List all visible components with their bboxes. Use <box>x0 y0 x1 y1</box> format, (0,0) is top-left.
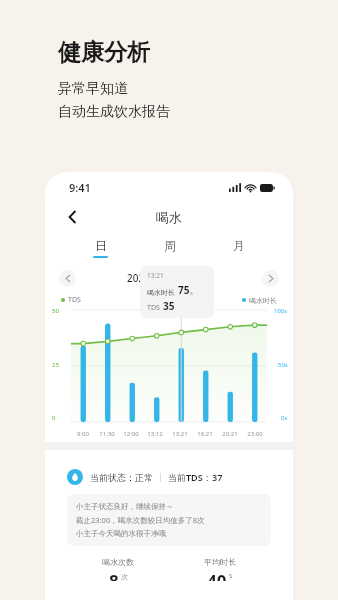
staticText: TDS <box>68 295 81 305</box>
staticText: 异常早知道 <box>58 80 128 98</box>
staticText: 健康分析 <box>58 38 150 67</box>
button[interactable]: Back <box>59 204 85 230</box>
staticText: 截止23:00，喝水次数较日均值多了8次 <box>76 515 205 525</box>
staticText: 13:12 <box>147 430 163 438</box>
button[interactable]: Previous day <box>59 270 76 287</box>
staticText: 0s <box>281 414 288 422</box>
staticText: 小主子今天喝的水很干净哦 <box>76 529 166 538</box>
staticText: 小主子状态良好，继续保持～ <box>76 502 174 511</box>
staticText: 日 <box>95 238 107 253</box>
staticText: 50 <box>52 307 59 315</box>
staticText: 35 <box>163 299 175 313</box>
button[interactable]: 2023年11月20日 <box>76 264 262 292</box>
staticText: 20:21 <box>222 430 238 438</box>
staticText: 喝水时长 <box>147 288 175 297</box>
staticText: TDS <box>147 303 160 313</box>
staticText: 75 <box>178 283 190 297</box>
staticText: 16:21 <box>197 430 213 438</box>
staticText: 平均时长 <box>204 557 236 567</box>
staticText: 9:00 <box>77 430 89 438</box>
button[interactable]: 日 <box>65 232 135 264</box>
staticText: 喝水 <box>156 209 182 225</box>
staticText: 13:21 <box>172 430 188 438</box>
staticText: 13:21 <box>147 271 164 280</box>
staticText: 0 <box>52 414 56 422</box>
staticText: 正常 <box>135 472 153 483</box>
button[interactable]: 月 <box>204 232 273 264</box>
button[interactable]: 喝水次数 <box>67 557 169 581</box>
staticText: 9:41 <box>69 180 91 195</box>
staticText: 8 <box>109 570 119 581</box>
staticText: 23:00 <box>247 430 263 438</box>
staticText: 当前TDS： <box>168 471 212 483</box>
staticText: 2023年11月20日 <box>127 271 203 285</box>
staticText: 12:00 <box>123 430 139 438</box>
staticText: 次 <box>121 572 128 581</box>
staticText: 40 <box>207 570 227 581</box>
staticText: 50s <box>278 361 288 369</box>
button[interactable]: 平均时长 <box>169 557 271 581</box>
staticText: 喝水时长 <box>249 296 277 305</box>
staticText: 当前状态： <box>90 472 135 483</box>
staticText: 自动生成饮水报告 <box>58 103 170 121</box>
staticText: 喝水次数 <box>102 557 134 567</box>
staticText: 100s <box>274 307 288 315</box>
button[interactable]: 周 <box>135 232 204 264</box>
staticText: 37 <box>212 471 223 483</box>
staticText: s <box>190 289 193 297</box>
staticText: 11:30 <box>99 430 115 438</box>
button[interactable]: Next day <box>262 270 279 287</box>
staticText: 月 <box>233 238 245 253</box>
staticText: 周 <box>164 238 176 253</box>
staticText: 25 <box>52 361 59 369</box>
staticText: s <box>229 571 233 581</box>
